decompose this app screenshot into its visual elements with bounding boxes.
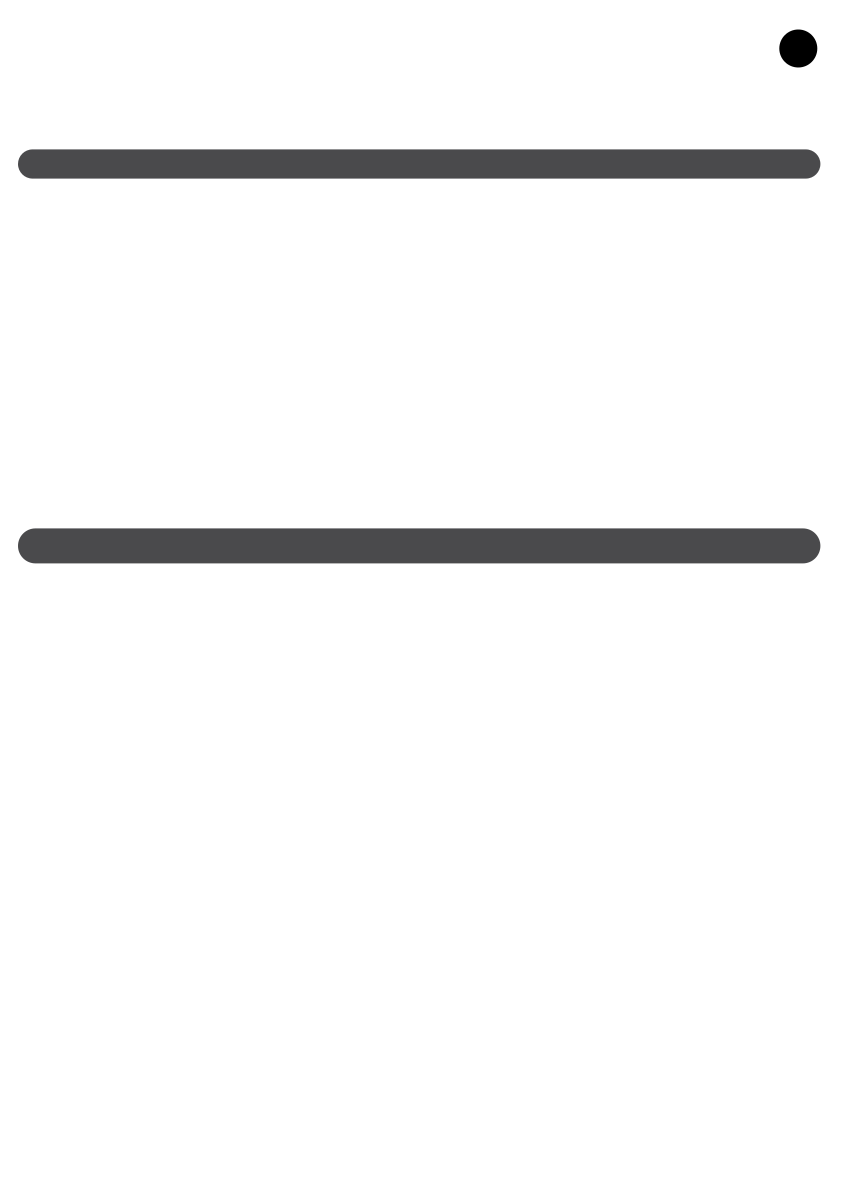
button[interactable]: Header <box>18 149 820 179</box>
button[interactable]: Profile <box>779 29 817 67</box>
button[interactable]: Continue <box>18 528 820 563</box>
